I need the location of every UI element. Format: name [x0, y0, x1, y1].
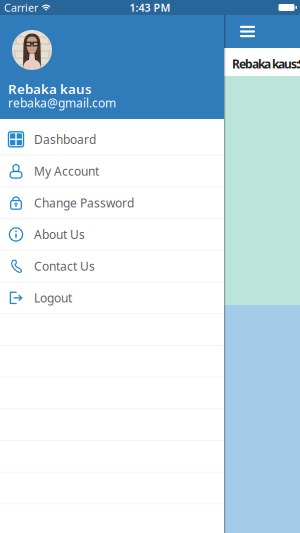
- button[interactable]: Dashboard: [0, 124, 224, 156]
- button[interactable]: Logout: [0, 282, 224, 314]
- staticText: Logout: [34, 290, 72, 306]
- button[interactable]: My Account: [0, 156, 224, 187]
- staticText: My Account: [34, 163, 99, 179]
- button[interactable]: Contact Us: [0, 251, 224, 282]
- button[interactable]: About Us: [0, 219, 224, 251]
- staticText: About Us: [34, 226, 85, 242]
- staticText: Change Password: [34, 195, 134, 211]
- staticText: rebaka@gmail.com: [8, 95, 116, 111]
- staticText: Dashboard: [34, 131, 96, 147]
- staticText: Contact Us: [34, 258, 95, 274]
- staticText: Carrier: [4, 0, 38, 15]
- button[interactable]: Change Password: [0, 187, 224, 219]
- staticText: Rebaka kaus: [8, 80, 92, 98]
- staticText: Rebaka kaus:S: [232, 56, 300, 72]
- button[interactable]: Menu: [240, 26, 255, 37]
- staticText: 1:43 PM: [129, 0, 170, 15]
